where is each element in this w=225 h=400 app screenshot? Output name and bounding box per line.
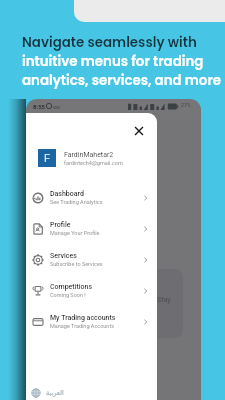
- staticText: Subscribe to Services: [50, 261, 103, 267]
- button[interactable]: العربية: [31, 388, 64, 398]
- button[interactable]: F: [26, 146, 157, 170]
- staticText: Services: [50, 252, 77, 260]
- staticText: F: [44, 152, 51, 165]
- button[interactable]: Dashboard: [26, 182, 157, 213]
- staticText: Coming Soon !: [50, 292, 86, 298]
- staticText: Profile: [50, 221, 71, 229]
- staticText: My Trading accounts: [50, 314, 116, 322]
- staticText: Manage Your Profile: [50, 230, 100, 236]
- staticText: 8:55: [33, 103, 46, 110]
- button[interactable]: Competitions: [26, 275, 157, 306]
- staticText: Navigate seamlessly with: [22, 33, 197, 52]
- staticText: Manage Trading Accounts: [50, 323, 115, 329]
- staticText: Stay: [157, 296, 171, 304]
- staticText: intuitive menus for trading: [22, 52, 204, 71]
- button[interactable]: Profile: [26, 213, 157, 244]
- staticText: 27%: [181, 102, 191, 108]
- staticText: fardintech4@gmail.com: [64, 160, 123, 166]
- staticText: FardinMahetar2: [64, 151, 114, 159]
- staticText: Competitions: [50, 283, 93, 291]
- staticText: Dashboard: [50, 190, 84, 198]
- button[interactable]: My Trading accounts: [26, 306, 157, 337]
- staticText: See Trading Analytics: [50, 199, 103, 205]
- button[interactable]: Services: [26, 244, 157, 275]
- staticText: العربية: [46, 389, 64, 397]
- staticText: analytics, services, and more: [22, 71, 222, 90]
- button[interactable]: Close: [130, 122, 148, 140]
